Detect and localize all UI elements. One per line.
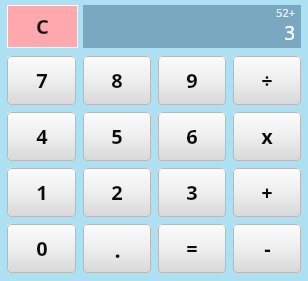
staticText: 4 xyxy=(36,123,48,150)
staticText: 3 xyxy=(284,20,295,46)
staticText: 52+ xyxy=(276,5,295,20)
staticText: C xyxy=(36,13,49,40)
button[interactable]: 3 xyxy=(158,168,226,217)
staticText: ÷ xyxy=(261,67,273,94)
staticText: x xyxy=(261,123,273,150)
button[interactable]: = xyxy=(158,224,226,273)
staticText: 5 xyxy=(111,123,123,150)
button[interactable]: 0 xyxy=(7,224,76,273)
button[interactable]: 9 xyxy=(158,56,226,105)
button[interactable]: 8 xyxy=(83,56,151,105)
button[interactable]: 6 xyxy=(158,112,226,161)
staticText: 0 xyxy=(36,235,48,262)
staticText: 9 xyxy=(186,67,198,94)
button[interactable]: + xyxy=(233,168,301,217)
button[interactable]: 5 xyxy=(83,112,151,161)
button[interactable]: - xyxy=(233,224,301,273)
button[interactable]: 4 xyxy=(7,112,76,161)
button[interactable]: x xyxy=(233,112,301,161)
staticText: 3 xyxy=(186,179,198,206)
staticText: + xyxy=(261,179,273,206)
staticText: 7 xyxy=(36,67,48,94)
button[interactable]: 1 xyxy=(7,168,76,217)
staticText: 2 xyxy=(111,179,123,206)
button[interactable]: ÷ xyxy=(233,56,301,105)
button[interactable]: 2 xyxy=(83,168,151,217)
button[interactable]: C xyxy=(8,6,77,47)
button[interactable]: 7 xyxy=(7,56,76,105)
staticText: 1 xyxy=(36,179,48,206)
button[interactable]: . xyxy=(83,224,151,273)
staticText: = xyxy=(186,235,198,262)
staticText: 6 xyxy=(186,123,198,150)
staticText: - xyxy=(264,235,271,262)
staticText: 8 xyxy=(111,67,123,94)
staticText: . xyxy=(114,234,121,264)
